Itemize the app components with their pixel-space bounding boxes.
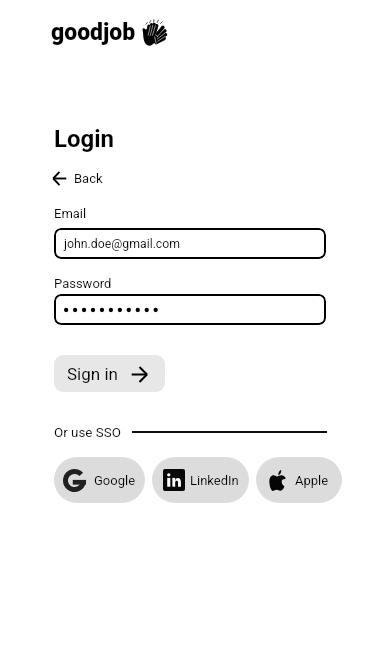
staticText: john.doe@gmail.com bbox=[64, 237, 181, 251]
staticText: Google bbox=[94, 473, 136, 488]
staticText: Password bbox=[54, 276, 112, 291]
button[interactable]: Back bbox=[50, 169, 105, 188]
button[interactable]: Email address field bbox=[54, 228, 326, 259]
button[interactable]: LinkedIn bbox=[152, 457, 249, 503]
staticText: Back bbox=[74, 171, 103, 186]
staticText: Login bbox=[54, 125, 115, 153]
button[interactable]: goodjob home bbox=[51, 16, 169, 46]
staticText: Apple bbox=[295, 473, 329, 488]
button[interactable]: Google bbox=[54, 457, 145, 503]
button[interactable]: Sign in bbox=[54, 355, 165, 392]
staticText: Or use SSO bbox=[54, 425, 121, 441]
staticText: Email bbox=[54, 206, 87, 221]
staticText: goodjob bbox=[51, 19, 136, 46]
button[interactable]: Password field bbox=[54, 294, 326, 325]
staticText: LinkedIn bbox=[190, 473, 239, 488]
button[interactable]: Apple bbox=[256, 457, 342, 503]
staticText: Sign in bbox=[67, 364, 118, 384]
